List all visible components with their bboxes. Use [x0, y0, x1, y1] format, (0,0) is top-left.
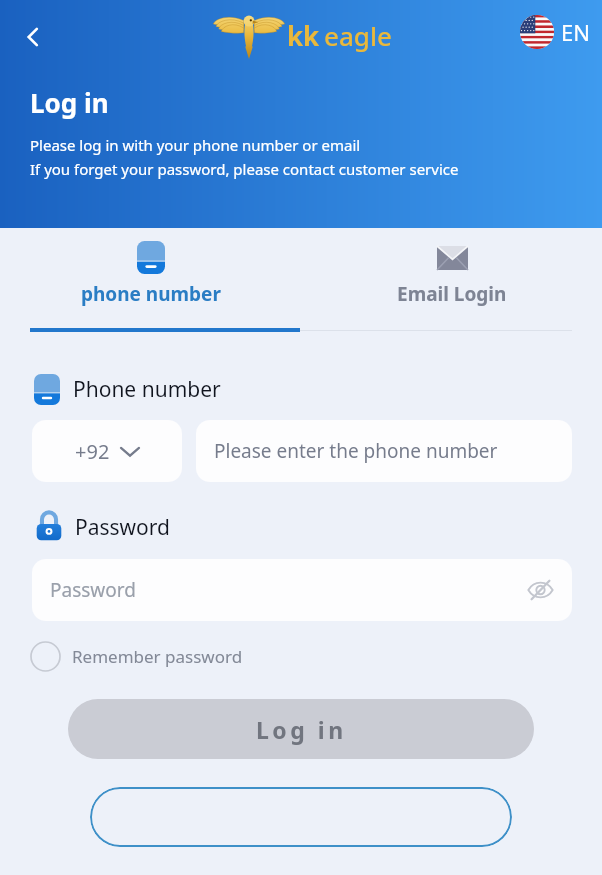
staticText: Please log in with your phone number or …	[30, 135, 361, 155]
staticText: Log in	[256, 714, 347, 745]
button[interactable]: Show password	[522, 572, 558, 608]
button[interactable]: Please enter the phone number	[196, 420, 572, 482]
staticText: kk	[287, 18, 320, 53]
button[interactable]: kk eagle logo	[211, 11, 392, 59]
button[interactable]	[90, 787, 512, 847]
button[interactable]: Password	[32, 559, 572, 621]
button[interactable]: Remember password	[30, 641, 243, 672]
staticText: phone number	[81, 281, 221, 307]
button[interactable]: Back	[10, 14, 56, 60]
staticText: Password	[50, 577, 136, 603]
button[interactable]: +92	[32, 420, 182, 482]
button[interactable]: phone number	[0, 228, 301, 328]
staticText: Remember password	[72, 645, 243, 668]
button[interactable]: Log in	[68, 699, 534, 759]
staticText: If you forget your password, please cont…	[30, 159, 459, 179]
button[interactable]: Email Login	[301, 228, 602, 328]
staticText: Please enter the phone number	[214, 438, 498, 464]
button[interactable]: EN	[520, 15, 590, 49]
staticText: Password	[75, 513, 170, 542]
staticText: Log in	[30, 85, 109, 120]
staticText: Phone number	[73, 375, 221, 404]
staticText: +92	[75, 438, 110, 465]
staticText: EN	[561, 17, 590, 47]
staticText: Email Login	[397, 281, 507, 307]
staticText: eagle	[324, 18, 392, 53]
